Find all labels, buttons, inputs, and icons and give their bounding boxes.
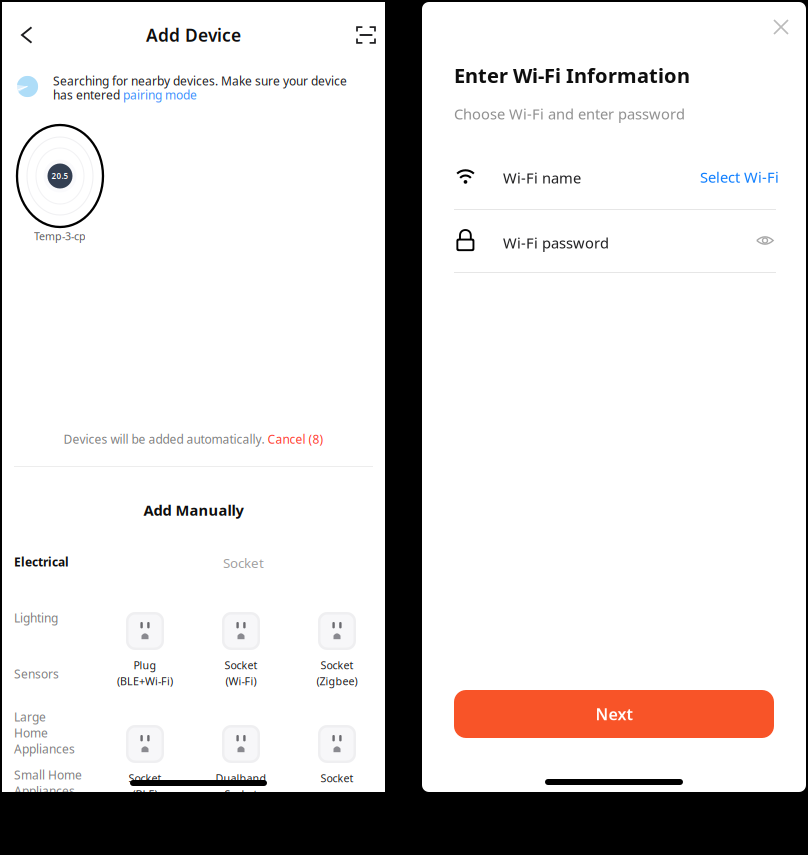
staticText: Select Wi-Fi xyxy=(700,167,779,187)
staticText: Searching for nearby devices. Make sure … xyxy=(53,73,347,89)
button[interactable]: Socket xyxy=(299,725,375,807)
staticText: Socket xyxy=(128,771,161,785)
staticText: (BLE+Wi-Fi) xyxy=(117,674,173,688)
button[interactable]: Next xyxy=(454,690,774,738)
button[interactable]: Socket xyxy=(299,612,375,694)
button[interactable]: Wi-Fi name xyxy=(454,149,776,210)
staticText: Small Home Appliances xyxy=(14,767,82,799)
staticText: Socket xyxy=(320,658,353,672)
staticText: (BLE) xyxy=(132,787,157,801)
staticText: Plug xyxy=(133,658,156,672)
staticText: Wi-Fi password xyxy=(503,233,609,252)
staticText: 20.5 xyxy=(51,171,68,181)
button[interactable]: Sensors xyxy=(14,666,104,682)
staticText: Choose Wi-Fi and enter password xyxy=(454,104,685,123)
button[interactable]: 20.5 xyxy=(10,124,110,254)
button[interactable]: Electrical xyxy=(14,554,104,570)
staticText: pairing mode xyxy=(123,87,197,103)
staticText: Add Device xyxy=(146,23,241,46)
button[interactable]: Plug xyxy=(107,612,183,694)
button[interactable]: Socket xyxy=(107,725,183,807)
button[interactable]: Small Home Appliances xyxy=(14,767,104,799)
button[interactable]: Scan QR code xyxy=(348,20,384,50)
button[interactable]: Lighting xyxy=(14,610,104,626)
button[interactable]: Cancel (8) xyxy=(267,431,323,447)
staticText: Enter Wi-Fi Information xyxy=(454,62,690,89)
staticText: Dualband xyxy=(215,771,266,785)
staticText: Socket xyxy=(224,658,257,672)
staticText: Add Manually xyxy=(143,500,243,520)
staticText: Socket xyxy=(223,554,264,572)
staticText: Socket xyxy=(224,787,257,801)
staticText: has entered xyxy=(53,87,123,103)
staticText: Lighting xyxy=(14,610,58,626)
staticText: Devices will be added automatically. xyxy=(63,431,267,447)
button[interactable]: pairing mode xyxy=(123,87,197,103)
staticText: Electrical xyxy=(14,554,69,570)
button[interactable]: Show password xyxy=(756,233,774,248)
button[interactable]: Close xyxy=(761,7,801,47)
staticText: (Zigbee) xyxy=(316,674,357,688)
staticText: Temp-3-cp xyxy=(34,229,86,243)
staticText: Large Home Appliances xyxy=(14,709,75,757)
staticText: Wi-Fi name xyxy=(503,168,581,187)
staticText: Socket xyxy=(320,771,353,785)
button[interactable]: Socket xyxy=(203,612,279,694)
staticText: Sensors xyxy=(14,666,59,682)
button[interactable]: Back xyxy=(10,19,44,51)
button[interactable]: Wi-Fi password xyxy=(454,210,776,272)
button[interactable]: Large Home Appliances xyxy=(14,709,104,757)
button[interactable]: Dualband xyxy=(203,725,279,807)
staticText: (Wi-Fi) xyxy=(225,674,256,688)
staticText: Next xyxy=(595,703,632,725)
staticText: Cancel (8) xyxy=(267,431,323,447)
